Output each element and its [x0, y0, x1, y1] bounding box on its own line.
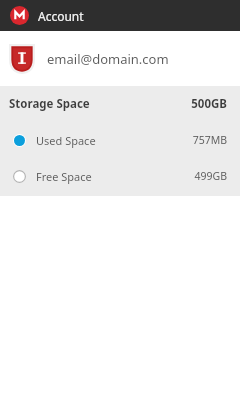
staticText: email@domain.com: [47, 50, 169, 68]
button[interactable]: Pro I account level: [0, 31, 240, 86]
staticText: 499GB: [194, 169, 227, 183]
staticText: Free Space: [36, 169, 92, 184]
staticText: 757MB: [192, 133, 227, 147]
other: MEGA: [10, 6, 29, 25]
button[interactable]: Free Space: [0, 158, 240, 194]
other: Pro I account level: [9, 44, 35, 74]
button[interactable]: Storage Space: [0, 86, 240, 122]
button[interactable]: MEGA: [0, 0, 240, 31]
staticText: Storage Space: [9, 96, 90, 112]
staticText: 500GB: [191, 96, 227, 112]
button[interactable]: Used Space: [0, 122, 240, 158]
staticText: Used Space: [36, 133, 96, 148]
staticText: Account: [38, 8, 84, 24]
